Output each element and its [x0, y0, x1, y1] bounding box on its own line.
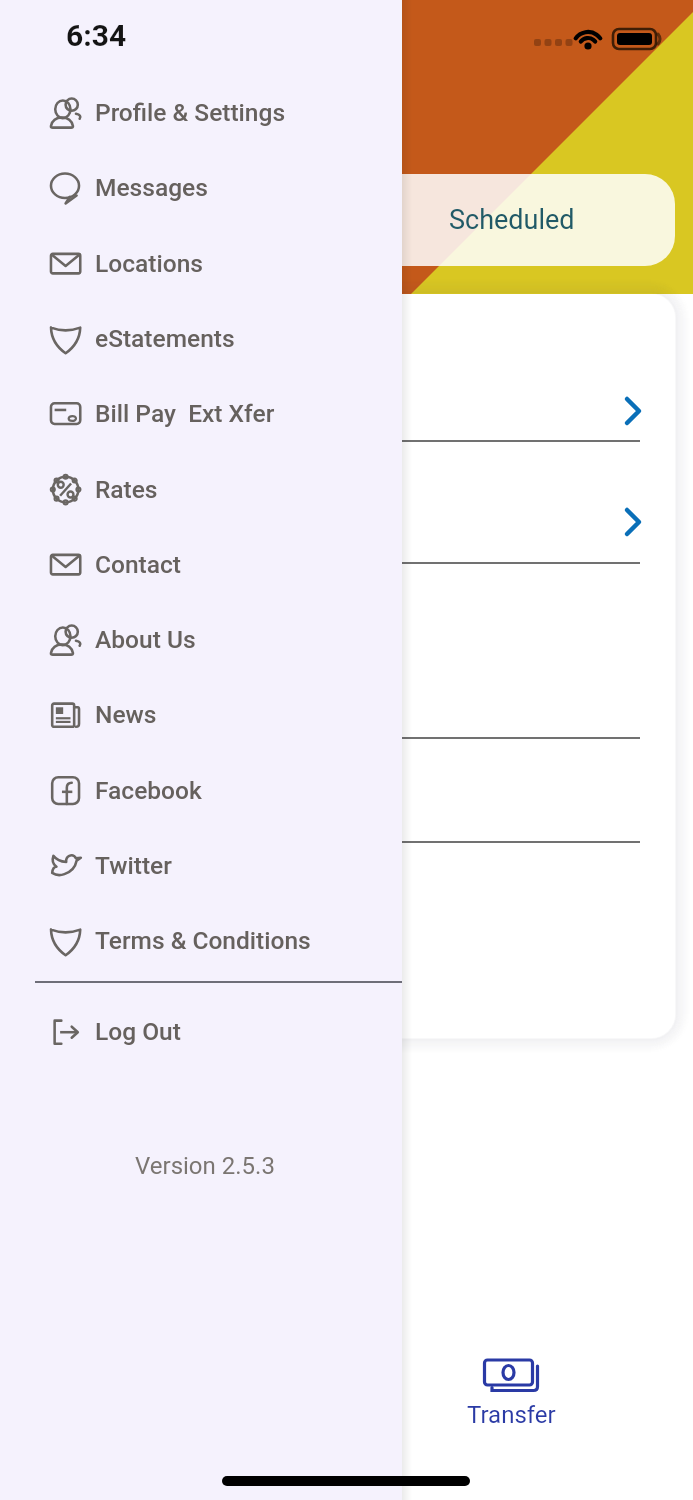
staticText: Bill Pay Ext Xfer: [95, 399, 275, 428]
button[interactable]: Twitter: [36, 837, 402, 893]
staticText: Version 2.5.3: [135, 1152, 275, 1180]
button[interactable]: Locations: [36, 235, 402, 291]
button[interactable]: About Us: [36, 611, 402, 667]
staticText: Messages: [95, 173, 208, 202]
button[interactable]: Terms & Conditions: [36, 912, 402, 968]
button[interactable]: Facebook: [36, 762, 402, 818]
button[interactable]: Scheduled: [348, 174, 675, 266]
staticText: Transfer: [467, 1401, 556, 1429]
staticText: Rates: [95, 475, 158, 504]
staticText: Terms & Conditions: [95, 926, 311, 955]
button[interactable]: Transfer: [449, 1358, 573, 1450]
button[interactable]: Bill Pay Ext Xfer: [36, 385, 402, 441]
staticText: Twitter: [95, 851, 172, 880]
staticText: Scheduled: [449, 204, 575, 236]
button[interactable]: [21, 294, 675, 441]
staticText: Locations: [95, 249, 203, 278]
button[interactable]: Log Out: [36, 1003, 402, 1059]
button[interactable]: Rates: [36, 461, 402, 517]
staticText: 6:34: [66, 18, 127, 53]
button[interactable]: Contact: [36, 536, 402, 592]
button[interactable]: eStatements: [36, 310, 402, 366]
button[interactable]: News: [36, 686, 402, 742]
staticText: eStatements: [95, 324, 235, 353]
staticText: Profile & Settings: [95, 98, 286, 127]
button[interactable]: Profile & Settings: [36, 84, 402, 140]
button[interactable]: Messages: [36, 159, 402, 215]
staticText: Facebook: [95, 776, 202, 805]
staticText: About Us: [95, 625, 196, 654]
staticText: Log Out: [95, 1017, 181, 1046]
button[interactable]: History: [21, 174, 348, 266]
staticText: Contact: [95, 550, 181, 579]
button[interactable]: [21, 441, 675, 563]
staticText: News: [95, 700, 157, 729]
